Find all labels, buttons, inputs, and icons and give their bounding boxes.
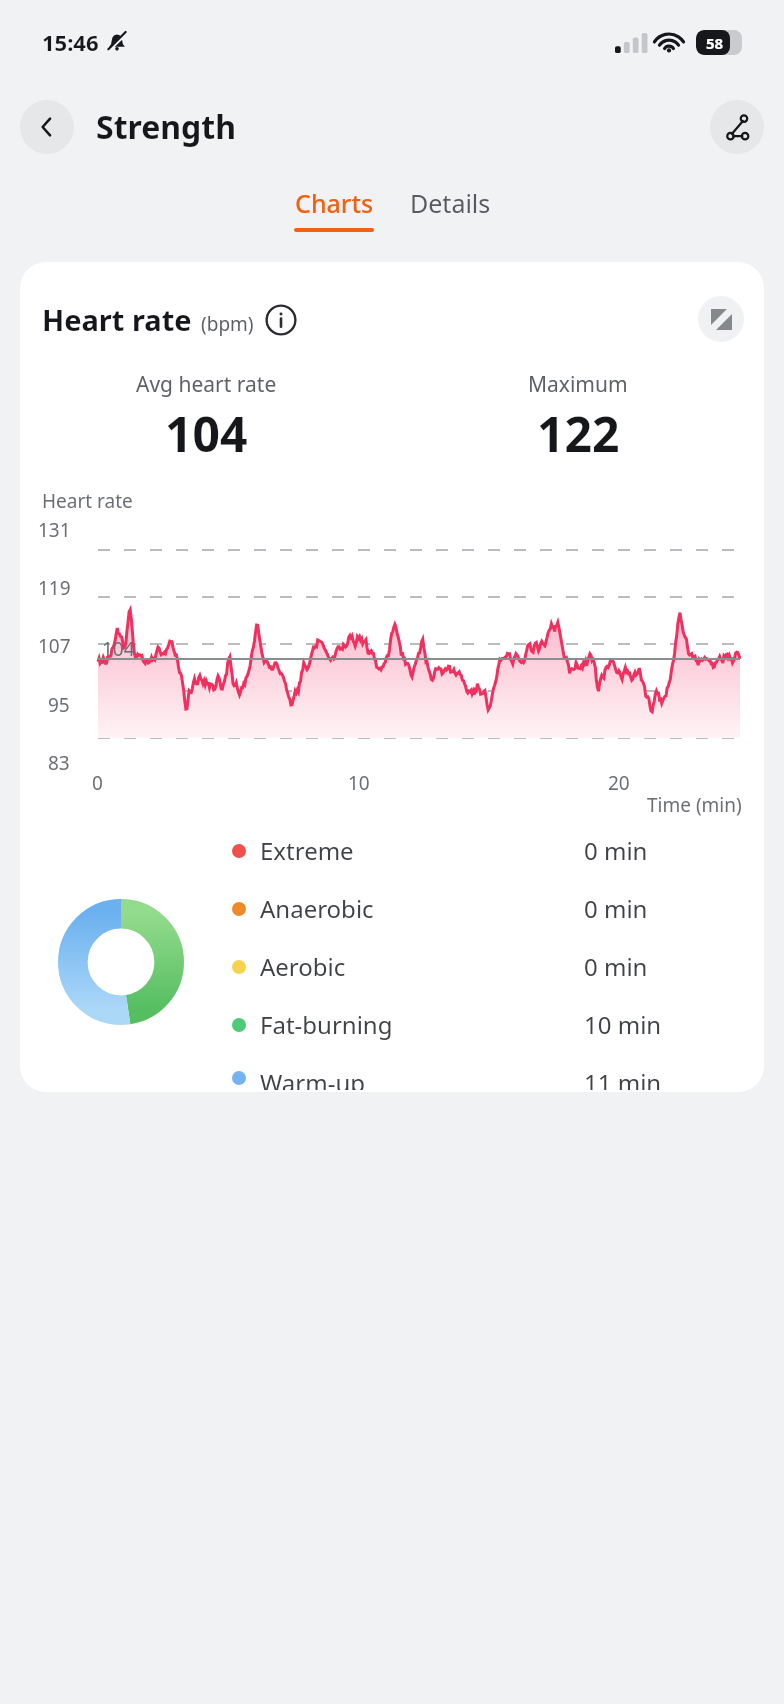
button[interactable]: Aerobic	[232, 950, 744, 983]
button[interactable]: Info	[265, 304, 297, 336]
staticText: Heart rate	[42, 488, 133, 514]
staticText: 15:46	[42, 27, 99, 57]
button[interactable]: Extreme	[232, 834, 744, 867]
staticText: Aerobic	[260, 950, 346, 983]
staticText: 122	[537, 401, 620, 466]
staticText: 119	[38, 575, 71, 601]
staticText: 0	[92, 770, 103, 796]
staticText: 11 min	[584, 1066, 662, 1090]
button[interactable]: Share	[710, 100, 764, 154]
staticText: (bpm)	[201, 311, 254, 337]
staticText: 83	[48, 750, 70, 776]
staticText: 10	[348, 770, 370, 796]
staticText: Details	[410, 186, 491, 220]
staticText: 131	[38, 517, 71, 543]
staticText: Strength	[96, 105, 237, 149]
button[interactable]: Warm-up	[232, 1066, 744, 1090]
staticText: Time (min)	[647, 792, 742, 818]
button[interactable]: Expand chart	[698, 296, 744, 342]
staticText: Heart rate	[42, 300, 192, 339]
staticText: Extreme	[260, 834, 354, 867]
staticText: 95	[48, 692, 70, 718]
staticText: Avg heart rate	[136, 370, 277, 399]
button[interactable]: Anaerobic	[232, 892, 744, 925]
staticText: 0 min	[584, 834, 648, 867]
staticText: 107	[38, 633, 71, 659]
button[interactable]: Details	[404, 186, 497, 220]
staticText: 58	[706, 33, 724, 53]
staticText: 0 min	[584, 892, 648, 925]
staticText: Anaerobic	[260, 892, 374, 925]
staticText: Warm-up	[260, 1066, 365, 1090]
staticText: 104	[165, 401, 248, 466]
staticText: 0 min	[584, 950, 648, 983]
staticText: 20	[608, 770, 630, 796]
staticText: 104	[102, 636, 135, 662]
button[interactable]: Back	[20, 100, 74, 154]
staticText: Fat-burning	[260, 1008, 393, 1041]
staticText: 10 min	[584, 1008, 662, 1041]
button[interactable]: Heart rate	[20, 262, 764, 1092]
staticText: Maximum	[528, 370, 628, 399]
button[interactable]: Charts	[288, 186, 380, 232]
staticText: Charts	[295, 186, 374, 220]
button[interactable]: Fat-burning	[232, 1008, 744, 1041]
